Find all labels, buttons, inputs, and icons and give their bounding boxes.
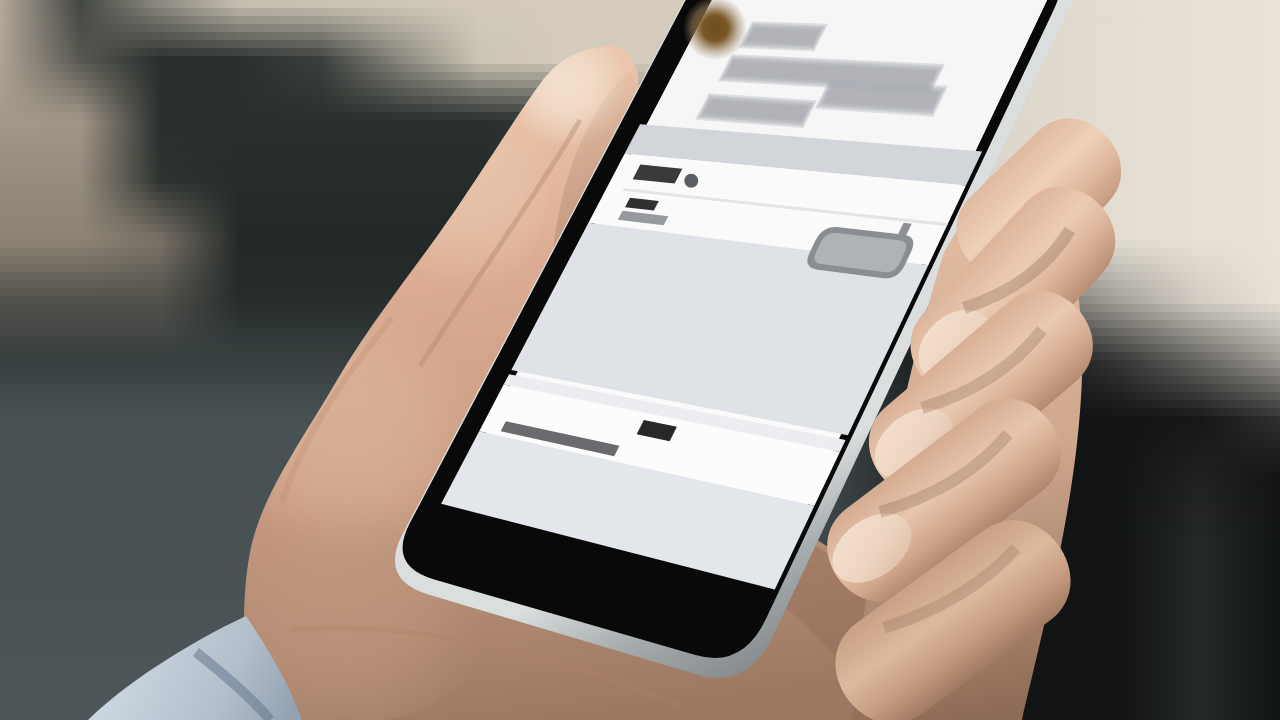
button[interactable]: Hand holding a phone showing a chat scre…	[0, 0, 1280, 720]
